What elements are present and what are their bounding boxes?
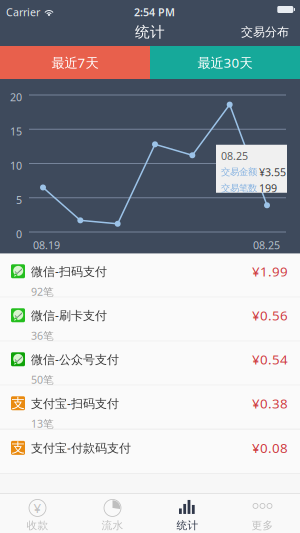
staticText: ¥0.38 bbox=[252, 394, 288, 412]
staticText: ¥0.54 bbox=[252, 350, 288, 368]
button[interactable]: 微信-刷卡支付 bbox=[0, 298, 300, 342]
button[interactable]: 交易分布 bbox=[230, 19, 300, 45]
staticText: 2:54 PM bbox=[134, 5, 175, 19]
button[interactable]: 支 bbox=[0, 430, 300, 474]
button[interactable]: 支 bbox=[0, 386, 300, 430]
staticText: 92笔 bbox=[31, 284, 54, 299]
staticText: Carrier bbox=[6, 5, 40, 19]
staticText: 交易笔数 bbox=[221, 182, 257, 194]
staticText: 统计 bbox=[176, 519, 198, 532]
staticText: 微信-刷卡支付 bbox=[31, 307, 107, 323]
staticText: 08.25 bbox=[221, 149, 248, 163]
staticText: 收款 bbox=[26, 519, 48, 532]
staticText: 15 bbox=[10, 124, 22, 138]
button[interactable]: 微信-扫码支付 bbox=[0, 254, 300, 298]
staticText: 199 bbox=[259, 181, 277, 195]
staticText: 流水 bbox=[101, 519, 123, 532]
staticText: 支付宝-付款码支付 bbox=[31, 440, 131, 456]
staticText: 微信-公众号支付 bbox=[31, 351, 119, 367]
button[interactable]: 微信-公众号支付 bbox=[0, 342, 300, 386]
staticText: 13笔 bbox=[31, 416, 54, 431]
staticText: 08.25 bbox=[253, 238, 280, 252]
staticText: 最近30天 bbox=[197, 54, 252, 71]
staticText: 更多 bbox=[251, 519, 273, 532]
staticText: ¥3.55 bbox=[259, 165, 286, 179]
button[interactable]: 流水 bbox=[75, 492, 150, 533]
staticText: 统计 bbox=[135, 23, 165, 41]
button[interactable]: ¥ bbox=[0, 492, 75, 533]
staticText: 10 bbox=[10, 158, 22, 173]
staticText: ¥0.08 bbox=[252, 439, 288, 457]
button[interactable]: 最近30天 bbox=[150, 46, 300, 79]
staticText: 50笔 bbox=[31, 372, 54, 387]
staticText: 微信-扫码支付 bbox=[31, 263, 107, 279]
staticText: 交易分布 bbox=[241, 25, 289, 39]
staticText: ¥ bbox=[33, 499, 41, 517]
staticText: 最近7天 bbox=[51, 54, 98, 71]
staticText: 支付宝-扫码支付 bbox=[31, 395, 119, 411]
button[interactable]: 更多 bbox=[225, 492, 300, 533]
staticText: ¥0.56 bbox=[252, 306, 288, 324]
staticText: 0 bbox=[16, 227, 22, 241]
staticText: 20 bbox=[10, 90, 22, 104]
staticText: 支 bbox=[11, 395, 24, 411]
staticText: 08.19 bbox=[33, 238, 60, 252]
staticText: 支 bbox=[11, 440, 24, 456]
staticText: 36笔 bbox=[31, 328, 54, 343]
staticText: ¥1.99 bbox=[252, 262, 288, 280]
staticText: 5 bbox=[16, 193, 22, 207]
button[interactable]: 最近7天 bbox=[0, 46, 150, 79]
staticText: 交易金额 bbox=[221, 166, 257, 178]
button[interactable]: 统计 bbox=[150, 492, 225, 533]
